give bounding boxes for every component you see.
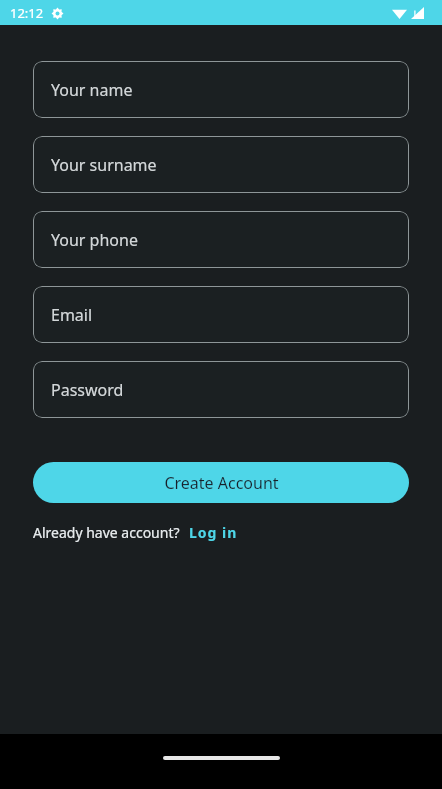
staticText: Your name xyxy=(51,79,133,101)
other: Mobile signal xyxy=(411,7,424,19)
button[interactable]: Create Account xyxy=(33,462,409,503)
staticText: 12:12 xyxy=(10,4,44,22)
button[interactable]: Password xyxy=(33,361,409,418)
staticText: Log in xyxy=(189,523,238,542)
staticText: Your surname xyxy=(51,154,157,176)
staticText: Email xyxy=(51,304,93,326)
other: Settings xyxy=(51,7,64,20)
staticText: Your phone xyxy=(51,229,138,251)
staticText: Password xyxy=(51,379,124,401)
button[interactable]: Email xyxy=(33,286,409,343)
button[interactable]: Your surname xyxy=(33,136,409,193)
button[interactable]: Your name xyxy=(33,61,409,118)
button[interactable]: Your phone xyxy=(33,211,409,268)
button[interactable]: Log in xyxy=(189,523,238,542)
staticText: Create Account xyxy=(164,472,279,494)
other: Wi-Fi xyxy=(392,7,407,19)
staticText: Already have account? xyxy=(33,523,180,542)
